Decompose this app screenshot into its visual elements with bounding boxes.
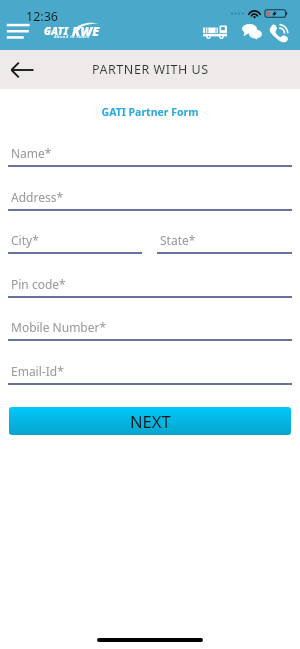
staticText: Address* (11, 189, 64, 205)
button[interactable]: Track shipment (199, 24, 229, 42)
staticText: Email-Id* (11, 363, 64, 379)
button[interactable]: Call (266, 20, 292, 46)
staticText: KWE (72, 23, 100, 40)
button[interactable]: Chat (236, 22, 262, 48)
button[interactable]: Address* (8, 189, 292, 211)
button[interactable]: Name* (8, 145, 292, 167)
button[interactable]: Menu (3, 22, 31, 42)
staticText: Pin code* (11, 276, 66, 292)
button[interactable]: Pin code* (8, 276, 292, 298)
staticText: Mobile Number* (11, 319, 107, 335)
button[interactable]: City* (8, 232, 142, 254)
button[interactable]: Back (7, 55, 37, 85)
staticText: NEXT (130, 410, 171, 432)
staticText: Ahead in reach (54, 34, 90, 40)
staticText: State* (160, 232, 196, 248)
staticText: GATI (44, 24, 69, 38)
button[interactable]: Mobile Number* (8, 319, 292, 341)
staticText: Name* (11, 145, 52, 161)
button[interactable]: NEXT (9, 407, 291, 435)
button[interactable]: Email-Id* (8, 363, 292, 385)
button[interactable]: State* (157, 232, 292, 254)
staticText: City* (11, 232, 39, 248)
staticText: GATI Partner Form (0, 105, 300, 119)
staticText: PARTNER WITH US (92, 61, 209, 78)
staticText: 12:36 (26, 8, 58, 25)
